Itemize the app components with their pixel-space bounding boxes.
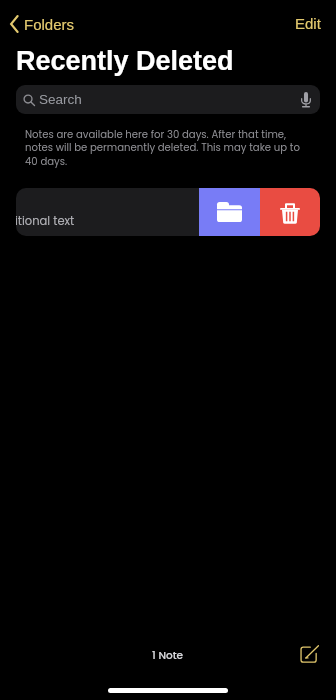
button[interactable]: Search: [16, 85, 320, 114]
button[interactable]: Move to folder: [199, 188, 260, 236]
button[interactable]: Folders: [8, 12, 77, 35]
staticText: Recently Deleted: [16, 46, 234, 76]
staticText: Search: [39, 92, 82, 107]
staticText: Edit: [295, 15, 321, 32]
staticText: Folders: [24, 16, 75, 33]
button[interactable]: Voice search: [300, 91, 312, 108]
staticText: itional text: [16, 213, 75, 229]
button[interactable]: Delete: [260, 188, 320, 236]
button[interactable]: itional text: [16, 188, 199, 236]
button[interactable]: Edit: [279, 9, 336, 38]
staticText: 1 Note: [152, 648, 184, 663]
staticText: Notes are available here for 30 days. Af…: [25, 127, 301, 169]
button[interactable]: New note: [289, 634, 329, 674]
